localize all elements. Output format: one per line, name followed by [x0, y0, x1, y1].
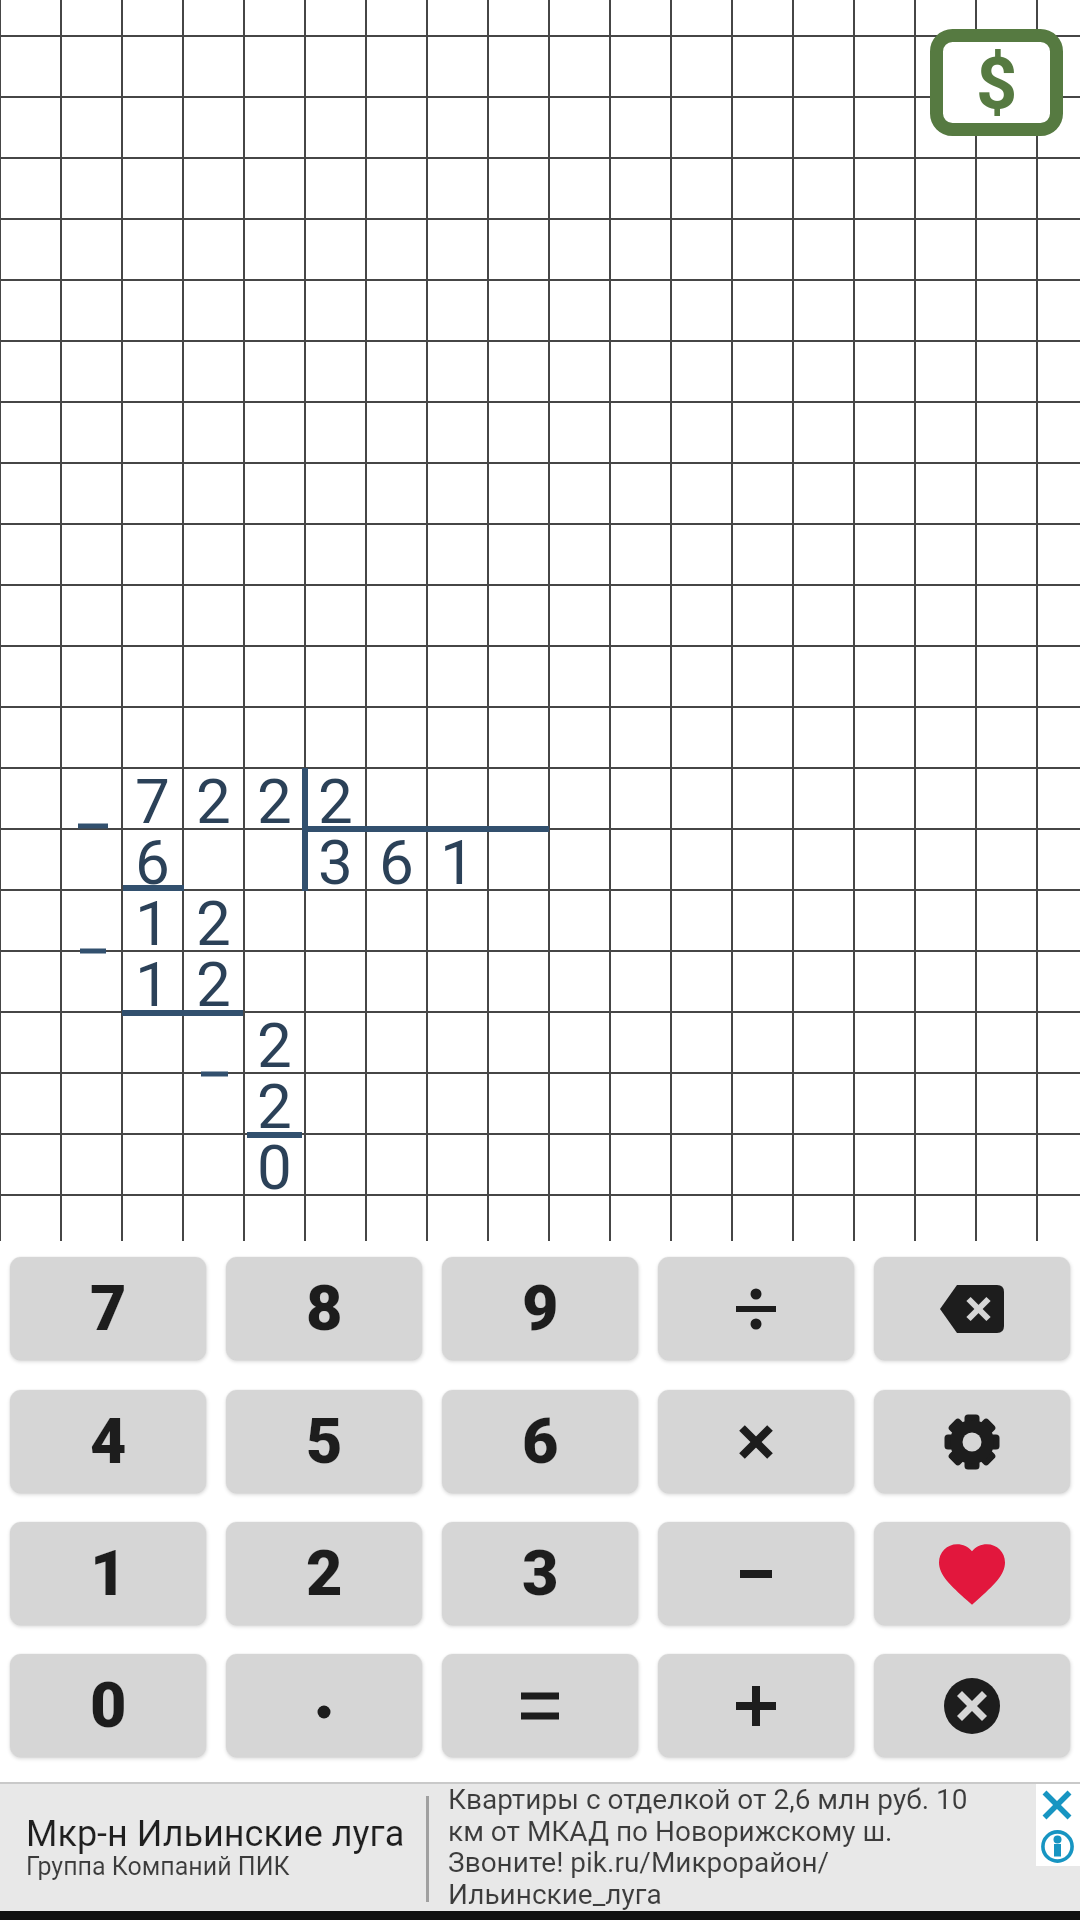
staticText: 1 — [135, 948, 170, 1009]
button[interactable] — [658, 1390, 854, 1493]
staticText: 4 — [90, 1405, 127, 1479]
button[interactable] — [1040, 1829, 1074, 1863]
staticText: 3 — [318, 826, 353, 887]
staticText: 2 — [257, 1009, 292, 1070]
button[interactable] — [874, 1390, 1070, 1493]
staticText: 8 — [306, 1272, 343, 1346]
staticText: 2 — [196, 948, 231, 1009]
staticText: Группа Компаний ПИК — [26, 1852, 290, 1881]
button[interactable]: 5 — [226, 1390, 422, 1493]
staticText: 2 — [318, 765, 353, 826]
staticText: 2 — [306, 1537, 343, 1611]
button[interactable] — [874, 1654, 1070, 1757]
staticText: 7 — [135, 765, 170, 826]
button[interactable]: 0 — [10, 1654, 206, 1757]
staticText: 7 — [90, 1272, 127, 1346]
button[interactable]: 3 — [442, 1522, 638, 1625]
staticText: 3 — [522, 1537, 559, 1611]
button[interactable]: 4 — [10, 1390, 206, 1493]
button[interactable] — [658, 1257, 854, 1360]
staticText: 1 — [440, 826, 475, 887]
button[interactable] — [442, 1654, 638, 1757]
staticText: 2 — [196, 765, 231, 826]
staticText: 1 — [90, 1537, 127, 1611]
button[interactable]: 6 — [442, 1390, 638, 1493]
staticText: 6 — [379, 826, 414, 887]
staticText: $ — [976, 41, 1018, 125]
staticText: 9 — [522, 1272, 559, 1346]
staticText: км от МКАД по Новорижскому ш. — [448, 1815, 893, 1848]
button[interactable]: 2 — [226, 1522, 422, 1625]
staticText: Мкр-н Ильинские луга — [26, 1813, 405, 1855]
button[interactable] — [874, 1257, 1070, 1360]
button[interactable] — [1040, 1788, 1074, 1822]
staticText: 1 — [135, 887, 170, 948]
staticText: Звоните! pik.ru/Микрорайон/ — [448, 1846, 830, 1879]
staticText: 2 — [196, 887, 231, 948]
staticText: 2 — [257, 765, 292, 826]
button[interactable]: 7 — [10, 1257, 206, 1360]
staticText: 2 — [257, 1070, 292, 1131]
staticText: Квартиры с отделкой от 2,6 млн руб. 10 — [448, 1783, 968, 1816]
button[interactable]: 8 — [226, 1257, 422, 1360]
button[interactable]: $ — [930, 29, 1063, 136]
button[interactable]: 9 — [442, 1257, 638, 1360]
staticText: 0 — [257, 1131, 292, 1192]
button[interactable] — [874, 1522, 1070, 1625]
button[interactable]: 1 — [10, 1522, 206, 1625]
staticText: 5 — [306, 1405, 343, 1479]
button[interactable] — [658, 1522, 854, 1625]
staticText: 6 — [522, 1405, 559, 1479]
staticText: Ильинские_луга — [448, 1878, 662, 1911]
staticText: 6 — [135, 826, 170, 887]
button[interactable] — [658, 1654, 854, 1757]
button[interactable] — [226, 1654, 422, 1757]
staticText: 0 — [90, 1669, 127, 1743]
button[interactable]: Мкр-н Ильинские луга — [0, 1782, 1080, 1911]
